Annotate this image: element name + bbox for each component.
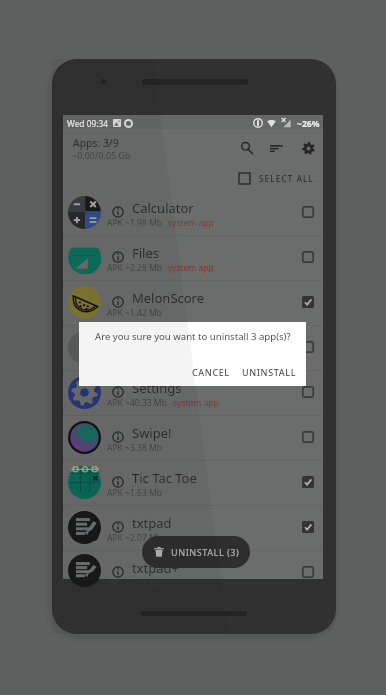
staticText: APK ~3.38 Mb xyxy=(107,442,162,454)
staticText: UNINSTALL (3) xyxy=(171,546,240,558)
button[interactable]: Select app xyxy=(297,426,319,448)
staticText: txtpad xyxy=(132,514,172,532)
staticText: txtpad+ xyxy=(132,559,179,577)
button[interactable]: Select app xyxy=(297,336,319,358)
staticText: Are you sure you want to uninstall 3 app… xyxy=(95,330,291,343)
staticText: Wed 09:34 xyxy=(67,118,109,129)
button[interactable]: UNINSTALL xyxy=(238,363,301,381)
staticText: Swipe! xyxy=(132,424,172,442)
staticText: Settings xyxy=(132,379,182,397)
staticText: Messaging xyxy=(132,334,199,352)
staticText: APK ~1.98 Mb xyxy=(107,217,162,229)
button[interactable]: Tic Tac Toe xyxy=(63,460,323,505)
staticText: APK ~2.11 Mb xyxy=(107,577,162,589)
button[interactable]: UNINSTALL (3) xyxy=(142,536,250,568)
button[interactable]: Settings xyxy=(293,133,323,163)
staticText: APK ~40.33 Mb xyxy=(107,397,167,409)
button[interactable]: txtpad+ xyxy=(63,550,323,579)
button[interactable]: CANCEL xyxy=(188,363,234,381)
button[interactable]: txtpad xyxy=(63,505,323,550)
staticText: MelonScore xyxy=(132,289,205,307)
staticText: Files xyxy=(132,244,160,262)
button[interactable]: Search xyxy=(232,133,262,163)
staticText: system app xyxy=(168,217,214,229)
staticText: system app xyxy=(173,397,219,409)
staticText: APK ~2.07 Mb xyxy=(107,532,162,544)
button[interactable]: Messaging xyxy=(63,325,323,370)
button[interactable]: Sort xyxy=(261,133,291,163)
button[interactable]: Files xyxy=(63,235,323,280)
staticText: Apps: 3/9 xyxy=(73,136,119,150)
staticText: CANCEL xyxy=(192,366,230,378)
staticText: ~0.00/0.05 Gb xyxy=(72,149,131,161)
button[interactable]: Select app xyxy=(297,561,319,583)
button[interactable]: Select app xyxy=(297,471,319,493)
staticText: APK ~1.63 Mb xyxy=(107,487,162,499)
staticText: UNINSTALL xyxy=(242,366,297,378)
button[interactable]: SELECT ALL xyxy=(235,169,320,188)
staticText: APK ~1.42 Mb xyxy=(107,307,162,319)
button[interactable]: Select app xyxy=(297,246,319,268)
staticText: ~26% xyxy=(297,118,320,130)
staticText: system app xyxy=(168,262,214,274)
button[interactable]: Select app xyxy=(297,291,319,313)
button[interactable]: MelonScore xyxy=(63,280,323,325)
staticText: Tic Tac Toe xyxy=(132,469,197,487)
staticText: SELECT ALL xyxy=(259,173,315,184)
button[interactable]: Select app xyxy=(297,201,319,223)
button[interactable]: Settings xyxy=(63,370,323,415)
button[interactable]: Swipe! xyxy=(63,415,323,460)
staticText: APK ~2.28 Mb xyxy=(107,262,162,274)
staticText: Calculator xyxy=(132,199,194,217)
button[interactable]: Select app xyxy=(297,516,319,538)
button[interactable]: Calculator xyxy=(63,190,323,235)
button[interactable]: Select app xyxy=(297,381,319,403)
staticText: system app xyxy=(168,352,214,364)
